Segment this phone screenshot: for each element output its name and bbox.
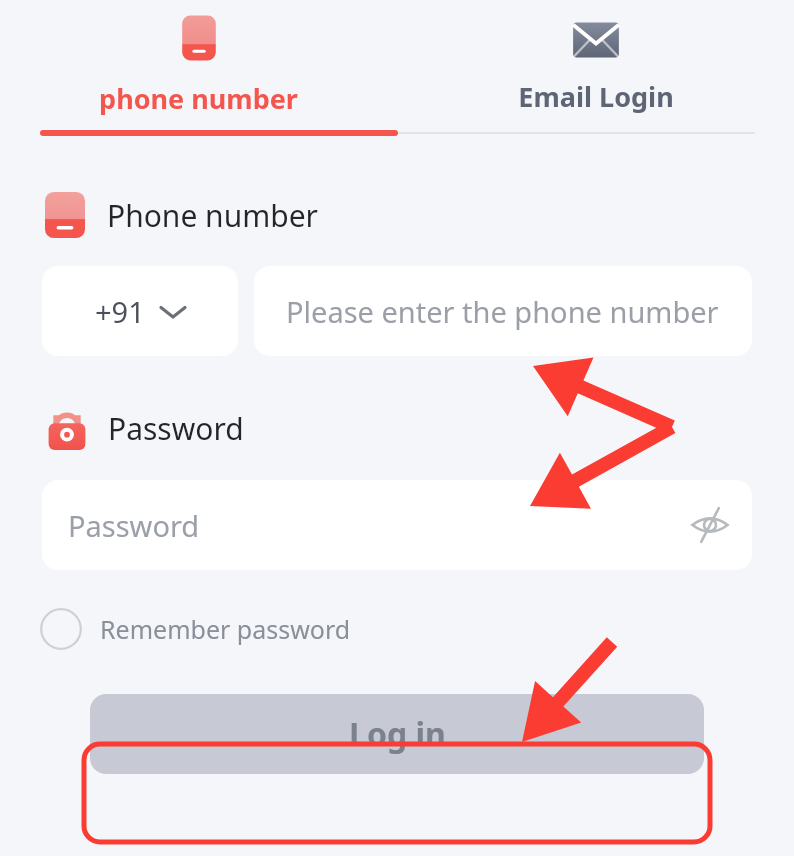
button[interactable]: phone number — [0, 0, 397, 130]
staticText: Please enter the phone number — [286, 292, 719, 331]
button[interactable]: Remember password — [40, 608, 351, 650]
staticText: phone number — [99, 80, 298, 117]
button[interactable]: Email Login — [397, 0, 794, 130]
staticText: Phone number — [107, 195, 318, 236]
staticText: Password — [108, 408, 244, 449]
button[interactable]: Select country code — [42, 266, 238, 356]
staticText: +91 — [95, 292, 145, 331]
staticText: Remember password — [100, 612, 351, 646]
staticText: Password — [68, 506, 200, 545]
button[interactable]: Password — [42, 480, 752, 570]
button[interactable]: Show password — [686, 501, 734, 549]
staticText: Log in — [349, 712, 446, 756]
staticText: Email Login — [518, 78, 674, 115]
button[interactable]: Please enter the phone number — [254, 266, 752, 356]
button[interactable]: Log in — [90, 694, 704, 774]
